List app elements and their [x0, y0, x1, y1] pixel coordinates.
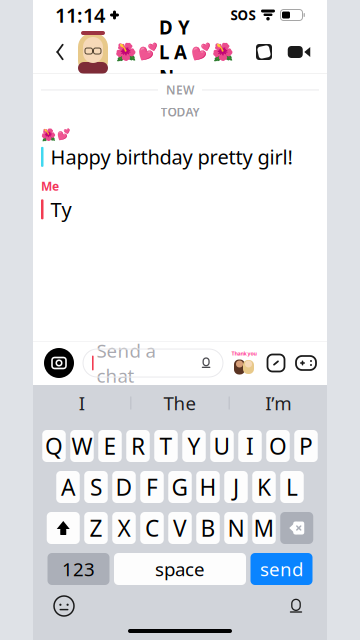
staticText: 🌺: [115, 42, 137, 62]
button[interactable]: B: [196, 512, 220, 544]
button[interactable]: I: [33, 385, 130, 421]
button[interactable]: D: [112, 471, 136, 503]
staticText: A: [61, 472, 75, 502]
button[interactable]: space: [114, 553, 246, 585]
staticText: J: [233, 472, 239, 502]
staticText: space: [155, 557, 205, 581]
staticText: G: [171, 472, 188, 502]
staticText: SOS: [230, 6, 255, 24]
button[interactable]: Send a chat: [83, 349, 223, 377]
button[interactable]: Delete: [280, 512, 313, 544]
button[interactable]: M: [252, 512, 276, 544]
staticText: I: [79, 391, 85, 415]
button[interactable]: I’m: [229, 385, 327, 421]
staticText: 123: [62, 557, 95, 581]
button[interactable]: A: [301, 471, 325, 503]
button[interactable]: L: [280, 471, 304, 503]
button[interactable]: A: [35, 471, 58, 503]
button[interactable]: X: [112, 512, 136, 544]
staticText: B: [200, 513, 215, 543]
staticText: Z: [89, 513, 102, 543]
staticText: M: [253, 513, 274, 543]
staticText: 💕: [57, 129, 70, 141]
button[interactable]: Video call: [281, 30, 317, 74]
button[interactable]: Games: [295, 352, 317, 374]
button[interactable]: send: [250, 553, 312, 585]
button[interactable]: V: [168, 512, 192, 544]
staticText: R: [131, 431, 145, 461]
button[interactable]: Back: [43, 30, 77, 74]
button[interactable]: T: [154, 430, 178, 462]
staticText: Send a chat: [97, 338, 156, 388]
button[interactable]: N: [224, 512, 248, 544]
staticText: I: [246, 431, 254, 461]
button[interactable]: P: [294, 430, 318, 462]
button[interactable]: A: [56, 471, 80, 503]
staticText: Q: [45, 431, 63, 461]
button[interactable]: The: [131, 385, 229, 421]
button[interactable]: Y: [182, 430, 206, 462]
staticText: K: [257, 472, 271, 502]
button[interactable]: Camera: [43, 347, 75, 379]
staticText: V: [173, 513, 187, 543]
staticText: C: [145, 513, 159, 543]
staticText: H: [199, 472, 216, 502]
staticText: L: [286, 472, 298, 502]
staticText: E: [103, 431, 116, 461]
button[interactable]: Q: [42, 430, 66, 462]
button[interactable]: K: [252, 471, 276, 503]
staticText: 🌺: [41, 128, 56, 142]
button[interactable]: 123: [47, 553, 109, 585]
button[interactable]: Call: [247, 30, 281, 74]
button[interactable]: Bitmoji sticker: [231, 350, 257, 376]
button[interactable]: G: [168, 471, 192, 503]
staticText: N: [227, 513, 244, 543]
staticText: Y: [187, 431, 200, 461]
staticText: NEW: [166, 82, 194, 98]
button[interactable]: Z: [84, 512, 108, 544]
staticText: send: [260, 557, 303, 581]
button[interactable]: Shift: [47, 512, 80, 544]
staticText: T: [159, 431, 172, 461]
button[interactable]: W: [70, 430, 94, 462]
staticText: X: [117, 513, 130, 543]
button[interactable]: F: [140, 471, 164, 503]
button[interactable]: E: [98, 430, 122, 462]
staticText: S: [90, 472, 102, 502]
button[interactable]: Emoji: [47, 591, 81, 621]
staticText: D: [115, 472, 132, 502]
staticText: O: [269, 431, 287, 461]
button[interactable]: Dictate: [279, 591, 313, 621]
staticText: 💕: [138, 43, 158, 61]
button[interactable]: H: [196, 471, 220, 503]
staticText: D Y L A N: [159, 15, 190, 89]
staticText: W: [71, 431, 92, 461]
staticText: U: [213, 431, 230, 461]
staticText: F: [146, 472, 158, 502]
button[interactable]: R: [126, 430, 150, 462]
button[interactable]: Stickers: [265, 352, 287, 374]
staticText: P: [299, 431, 313, 461]
staticText: Ty: [50, 196, 71, 223]
staticText: 🌺: [212, 42, 234, 62]
staticText: Happy birthday pretty girl!: [50, 144, 292, 170]
button[interactable]: S: [84, 471, 108, 503]
staticText: I’m: [265, 391, 291, 415]
staticText: Me: [41, 178, 59, 194]
button[interactable]: U: [210, 430, 234, 462]
button[interactable]: C: [140, 512, 164, 544]
button[interactable]: O: [266, 430, 290, 462]
staticText: The: [163, 391, 196, 415]
button[interactable]: I: [238, 430, 262, 462]
staticText: TODAY: [160, 104, 199, 120]
button[interactable]: 🌺: [77, 30, 234, 74]
button[interactable]: J: [224, 471, 248, 503]
staticText: 11:14: [55, 2, 105, 28]
staticText: Thank you: [231, 350, 256, 357]
staticText: 💕: [191, 43, 211, 61]
